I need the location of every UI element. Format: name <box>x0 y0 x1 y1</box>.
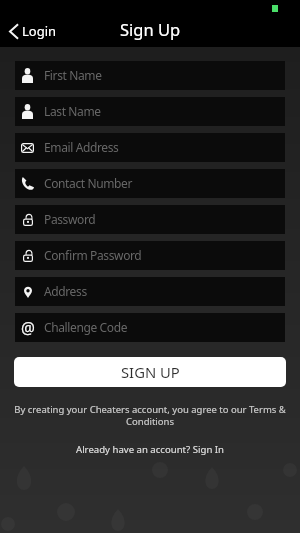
staticText: Last Name <box>44 103 101 119</box>
staticText: Address <box>44 283 87 299</box>
other: Back <box>9 24 18 39</box>
button[interactable]: Last Name <box>15 97 285 126</box>
staticText: SIGN UP <box>121 362 180 382</box>
staticText: @ <box>21 317 35 338</box>
button[interactable]: SIGN UP <box>14 357 286 387</box>
staticText: Login <box>22 22 57 40</box>
button[interactable]: Contact Number <box>15 169 285 198</box>
staticText: First Name <box>44 67 102 83</box>
staticText: Challenge Code <box>44 319 128 335</box>
button[interactable]: @ <box>15 313 285 342</box>
button[interactable]: First Name <box>15 61 285 90</box>
button[interactable]: Email Address <box>15 133 285 162</box>
staticText: Password <box>44 211 96 227</box>
staticText: Confirm Password <box>44 247 142 263</box>
staticText: Sign Up <box>120 18 181 40</box>
staticText: By creating your Cheaters account, you a… <box>6 403 294 428</box>
button[interactable]: Back <box>5 19 61 43</box>
button[interactable]: Address <box>15 277 285 306</box>
staticText: Contact Number <box>44 175 133 191</box>
button[interactable]: Password <box>15 205 285 234</box>
button[interactable]: Confirm Password <box>15 241 285 270</box>
button[interactable]: Already have an account? Sign In <box>0 443 300 456</box>
staticText: Email Address <box>44 139 119 155</box>
